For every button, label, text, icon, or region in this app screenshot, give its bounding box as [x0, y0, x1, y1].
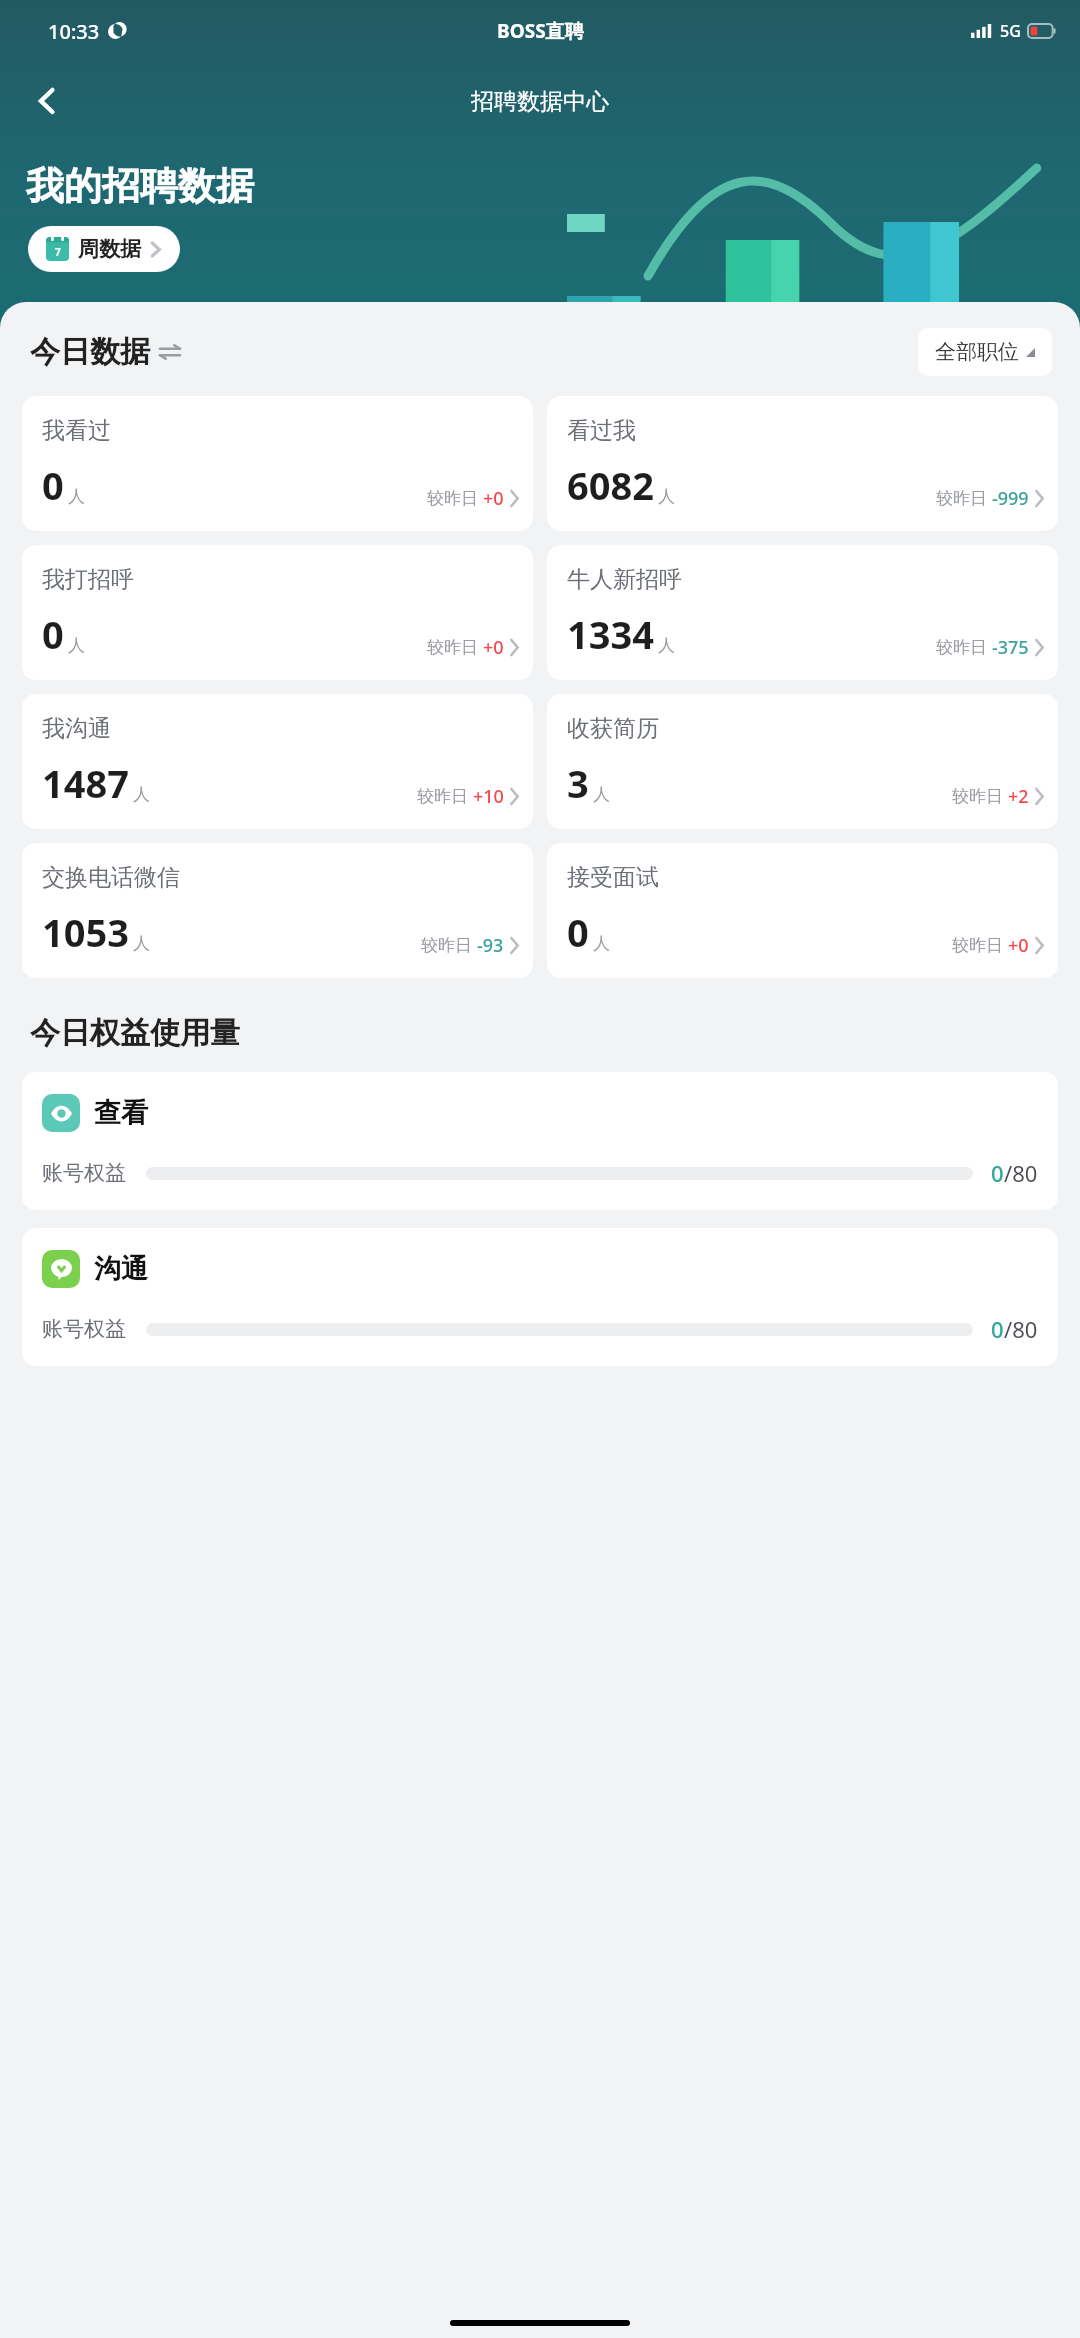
staticText: 今日权益使用量	[30, 1014, 240, 1052]
staticText: 5G	[1000, 20, 1021, 42]
staticText: 人	[133, 784, 150, 805]
staticText: 我的招聘数据	[26, 162, 254, 210]
staticText: 0	[42, 608, 64, 660]
staticText: 今日数据	[30, 333, 150, 371]
staticText: +0	[483, 635, 504, 660]
staticText: 0	[991, 1158, 1004, 1188]
staticText: 沟通	[94, 1252, 148, 1286]
staticText: +10	[473, 784, 504, 809]
staticText: 查看	[94, 1096, 148, 1130]
staticText: 较昨日	[421, 935, 472, 956]
button[interactable]: 我沟通	[22, 694, 533, 829]
staticText: 较昨日	[936, 488, 987, 509]
button[interactable]: 全部职位	[918, 328, 1052, 376]
staticText: /80	[1004, 1314, 1038, 1344]
button[interactable]: 看过我	[547, 396, 1058, 531]
button[interactable]: Back	[22, 75, 74, 127]
staticText: 人	[658, 635, 675, 656]
staticText: +0	[1008, 933, 1029, 958]
staticText: 接受面试	[567, 863, 659, 892]
staticText: 人	[68, 486, 85, 507]
staticText: -375	[992, 635, 1029, 660]
staticText: 全部职位	[935, 339, 1019, 365]
staticText: 7	[55, 245, 61, 259]
staticText: 较昨日	[952, 935, 1003, 956]
button[interactable]: 查看	[22, 1072, 1058, 1210]
staticText: 交换电话微信	[42, 863, 180, 892]
staticText: +2	[1008, 784, 1029, 809]
staticText: -999	[992, 486, 1029, 511]
staticText: 6082	[567, 459, 654, 511]
staticText: 我看过	[42, 416, 111, 445]
staticText: 我沟通	[42, 714, 111, 743]
button[interactable]: 今日数据	[30, 333, 180, 371]
staticText: 人	[658, 486, 675, 507]
staticText: 人	[68, 635, 85, 656]
staticText: 较昨日	[936, 637, 987, 658]
staticText: +0	[483, 486, 504, 511]
staticText: 10:33	[48, 18, 100, 45]
staticText: 人	[593, 784, 610, 805]
staticText: 0	[567, 906, 589, 958]
button[interactable]: 我看过	[22, 396, 533, 531]
staticText: 周数据	[78, 236, 141, 262]
staticText: 人	[593, 933, 610, 954]
staticText: 账号权益	[42, 1160, 126, 1186]
button[interactable]: 交换电话微信	[22, 843, 533, 978]
staticText: -93	[477, 933, 504, 958]
staticText: 招聘数据中心	[471, 87, 609, 116]
staticText: 1334	[567, 608, 654, 660]
button[interactable]: 牛人新招呼	[547, 545, 1058, 680]
staticText: 较昨日	[417, 786, 468, 807]
staticText: 看过我	[567, 416, 636, 445]
staticText: 较昨日	[427, 637, 478, 658]
staticText: 1487	[42, 757, 129, 809]
staticText: 人	[133, 933, 150, 954]
staticText: 我打招呼	[42, 565, 134, 594]
button[interactable]: 收获简历	[547, 694, 1058, 829]
staticText: 较昨日	[952, 786, 1003, 807]
button[interactable]: 沟通	[22, 1228, 1058, 1366]
button[interactable]: 7	[28, 226, 180, 272]
staticText: BOSS直聘	[497, 18, 584, 44]
staticText: 3	[567, 757, 589, 809]
button[interactable]: 接受面试	[547, 843, 1058, 978]
staticText: 较昨日	[427, 488, 478, 509]
button[interactable]: 我打招呼	[22, 545, 533, 680]
staticText: 牛人新招呼	[567, 565, 682, 594]
staticText: 收获简历	[567, 714, 659, 743]
staticText: 0	[991, 1314, 1004, 1344]
staticText: 账号权益	[42, 1316, 126, 1342]
staticText: 1053	[42, 906, 129, 958]
staticText: /80	[1004, 1158, 1038, 1188]
staticText: 0	[42, 459, 64, 511]
